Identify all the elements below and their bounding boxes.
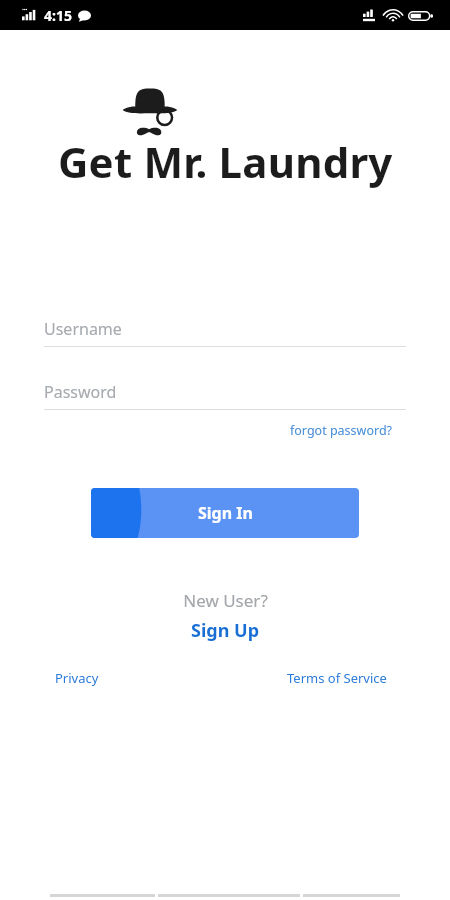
staticText: 4:15 <box>44 6 72 25</box>
button[interactable]: Password <box>44 381 406 410</box>
staticText: forgot password? <box>290 422 393 439</box>
button[interactable]: Privacy <box>52 666 102 690</box>
button[interactable]: Sign In <box>91 488 359 538</box>
button[interactable]: Username <box>44 318 406 347</box>
staticText: Sign In <box>198 502 253 524</box>
button[interactable]: Terms of Service <box>284 666 390 690</box>
staticText: New User? <box>183 589 268 612</box>
staticText: Get Mr. Laundry <box>58 133 393 190</box>
button[interactable]: Sign Up <box>185 616 266 645</box>
staticText: Terms of Service <box>287 669 387 687</box>
button[interactable]: forgot password? <box>288 420 395 441</box>
staticText: Password <box>44 381 117 403</box>
staticText: Username <box>44 318 122 340</box>
staticText: Sign Up <box>191 618 260 643</box>
staticText: Privacy <box>55 669 99 687</box>
